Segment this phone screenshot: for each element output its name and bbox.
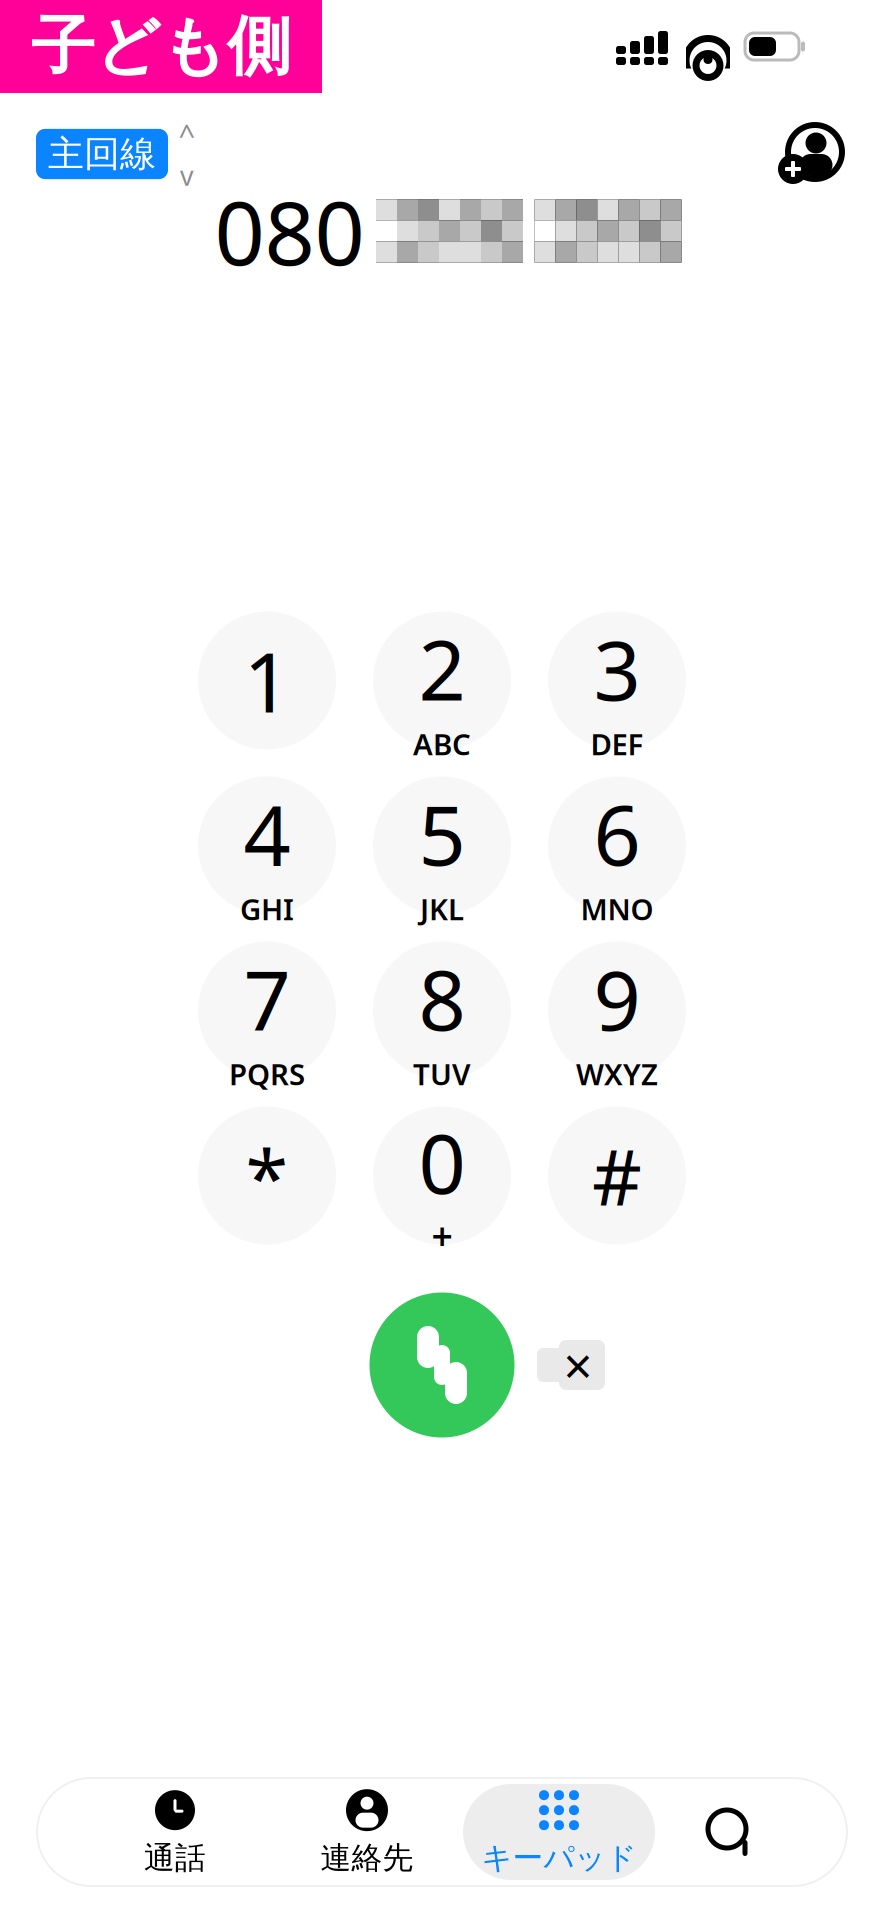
staticText: PQRS <box>229 1054 305 1093</box>
button[interactable]: 発信 <box>369 1292 514 1437</box>
button[interactable]: 0 <box>373 1106 511 1244</box>
staticText: 主回線 <box>48 132 156 176</box>
staticText: 8 <box>418 944 465 1053</box>
staticText: GHI <box>240 889 294 928</box>
button[interactable]: # <box>548 1106 686 1244</box>
button[interactable]: 5 <box>373 776 511 914</box>
staticText: MNO <box>580 889 653 928</box>
button[interactable]: キーパッド <box>463 1784 655 1880</box>
staticText: + <box>431 1211 452 1260</box>
staticText: JKL <box>420 889 464 928</box>
staticText: 子ども側 <box>31 7 291 86</box>
button[interactable]: 4 <box>198 776 336 914</box>
staticText: 4 <box>243 779 290 888</box>
button[interactable]: 連絡先 <box>271 1784 463 1880</box>
staticText: 9 <box>593 944 640 1053</box>
staticText: 通話 <box>144 1839 206 1877</box>
button[interactable]: 2 <box>373 611 511 749</box>
staticText: ABC <box>413 724 471 763</box>
button[interactable]: 検索 <box>655 1784 805 1880</box>
staticText: # <box>592 1124 642 1227</box>
staticText: × <box>563 1331 592 1399</box>
staticText: キーパッド <box>481 1839 636 1877</box>
staticText: * <box>245 1124 288 1227</box>
button[interactable]: 通話 <box>79 1784 271 1880</box>
staticText: 6 <box>593 779 640 888</box>
button[interactable]: 6 <box>548 776 686 914</box>
button[interactable]: 連絡先に追加 <box>772 123 848 185</box>
staticText: 0 <box>418 1107 465 1217</box>
staticText: DEF <box>590 724 643 763</box>
staticText: WXYZ <box>576 1054 658 1093</box>
staticText: ^ <box>178 115 195 154</box>
button[interactable]: 7 <box>198 941 336 1079</box>
button[interactable]: * <box>198 1106 336 1244</box>
button[interactable]: 1 <box>198 611 336 749</box>
button[interactable]: 8 <box>373 941 511 1079</box>
staticText: 5 <box>418 779 465 888</box>
button[interactable]: 3 <box>548 611 686 749</box>
staticText: 1 <box>243 626 290 735</box>
staticText: 連絡先 <box>320 1839 413 1877</box>
staticText: 2 <box>418 614 465 723</box>
staticText: 080 <box>214 173 364 289</box>
button[interactable]: 9 <box>548 941 686 1079</box>
staticText: TUV <box>413 1054 471 1093</box>
staticText: 7 <box>243 944 290 1053</box>
staticText: 3 <box>593 614 640 723</box>
button[interactable]: 主回線 <box>36 129 198 179</box>
staticText: v <box>180 158 194 193</box>
button[interactable]: 削除 <box>528 1330 614 1400</box>
